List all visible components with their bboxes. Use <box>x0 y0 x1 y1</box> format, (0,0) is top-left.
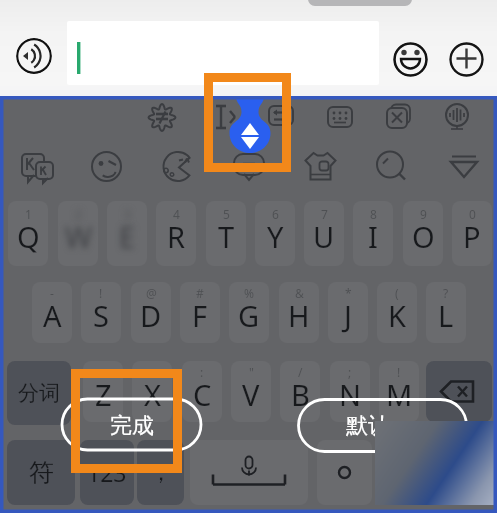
staticText: S <box>93 296 109 335</box>
staticText: : <box>200 364 204 380</box>
staticText: X <box>144 375 161 414</box>
button[interactable]: * <box>328 282 368 343</box>
button[interactable]: + <box>83 361 123 422</box>
staticText: E <box>119 217 136 256</box>
staticText: 4 <box>173 206 180 222</box>
button[interactable]: 3 <box>107 201 147 266</box>
staticText: 5 <box>223 206 230 222</box>
staticText: M <box>386 375 413 414</box>
button[interactable]: 1 <box>8 201 48 266</box>
staticText: Y <box>267 217 284 256</box>
staticText: ( <box>395 285 399 301</box>
staticText: 符 <box>29 457 54 488</box>
button[interactable]: 7 <box>304 201 344 266</box>
staticText: 默认 <box>346 412 390 440</box>
staticText: 0 <box>469 206 476 222</box>
button[interactable] <box>426 361 492 422</box>
staticText: R <box>167 217 186 256</box>
button[interactable]: 0 <box>452 201 492 266</box>
staticText: H <box>288 296 310 335</box>
staticText: G <box>238 296 260 335</box>
staticText: 123 <box>87 457 127 488</box>
staticText: Q <box>17 217 40 256</box>
staticText: Z <box>95 375 112 414</box>
staticText: / <box>298 364 303 380</box>
button[interactable]: 5 <box>206 201 246 266</box>
button[interactable] <box>317 440 372 505</box>
button[interactable]: " <box>231 361 271 422</box>
staticText: 分词 <box>18 380 60 406</box>
staticText: @ <box>146 285 157 301</box>
staticText: W <box>65 217 92 256</box>
button[interactable]: 8 <box>353 201 393 266</box>
button[interactable]: : <box>182 361 222 422</box>
button[interactable]: / <box>280 361 320 422</box>
button[interactable]: @ <box>131 282 171 343</box>
staticText: = <box>149 364 156 380</box>
button[interactable] <box>377 440 492 505</box>
button[interactable]: ( <box>377 282 417 343</box>
staticText: ; <box>348 364 352 380</box>
staticText: 完成 <box>110 412 154 440</box>
button[interactable]: Add <box>449 42 484 77</box>
staticText: 9 <box>420 206 427 222</box>
staticText: O <box>412 217 435 256</box>
staticText: J <box>344 296 352 335</box>
staticText: N <box>339 375 362 414</box>
staticText: * <box>345 285 352 301</box>
button[interactable]: = <box>132 361 172 422</box>
staticText: V <box>242 375 260 414</box>
button[interactable]: ! <box>81 282 121 343</box>
staticText: & <box>295 285 304 301</box>
staticText: F <box>192 296 208 335</box>
staticText: C <box>193 375 212 414</box>
button[interactable]: - <box>32 282 72 343</box>
staticText: ， <box>150 459 172 487</box>
staticText: ! <box>99 285 103 301</box>
staticText: # <box>196 285 204 301</box>
button[interactable]: ， <box>137 440 184 505</box>
button[interactable]: Emoji <box>393 42 428 77</box>
button[interactable]: Voice input <box>16 38 52 74</box>
staticText: A <box>43 296 62 335</box>
button[interactable]: 4 <box>156 201 196 266</box>
button[interactable]: ! <box>379 361 419 422</box>
button[interactable]: ? <box>426 282 466 343</box>
staticText: D <box>140 296 162 335</box>
staticText: 7 <box>321 206 328 222</box>
staticText: ? <box>443 285 449 301</box>
staticText: L <box>438 296 454 335</box>
button[interactable] <box>190 440 308 505</box>
staticText: 8 <box>370 206 377 222</box>
button[interactable]: 6 <box>255 201 295 266</box>
staticText: + <box>100 364 107 380</box>
button[interactable]: & <box>279 282 319 343</box>
button[interactable]: 符 <box>7 440 75 505</box>
button[interactable]: 2 <box>58 201 98 266</box>
staticText: T <box>218 217 235 256</box>
staticText: B <box>291 375 310 414</box>
button[interactable]: % <box>229 282 269 343</box>
button[interactable]: 9 <box>403 201 443 266</box>
staticText: I <box>368 217 378 256</box>
button[interactable]: 123 <box>80 440 134 505</box>
button[interactable]: ; <box>330 361 370 422</box>
staticText: % <box>244 285 254 301</box>
button[interactable]: # <box>180 282 220 343</box>
staticText: " <box>249 364 254 380</box>
staticText: 1 <box>25 206 32 222</box>
staticText: U <box>313 217 335 256</box>
staticText: - <box>50 285 54 301</box>
button[interactable]: 分词 <box>7 361 71 425</box>
staticText: 6 <box>272 206 279 222</box>
staticText: P <box>463 217 481 256</box>
staticText: ! <box>397 364 401 380</box>
staticText: K <box>388 296 406 335</box>
